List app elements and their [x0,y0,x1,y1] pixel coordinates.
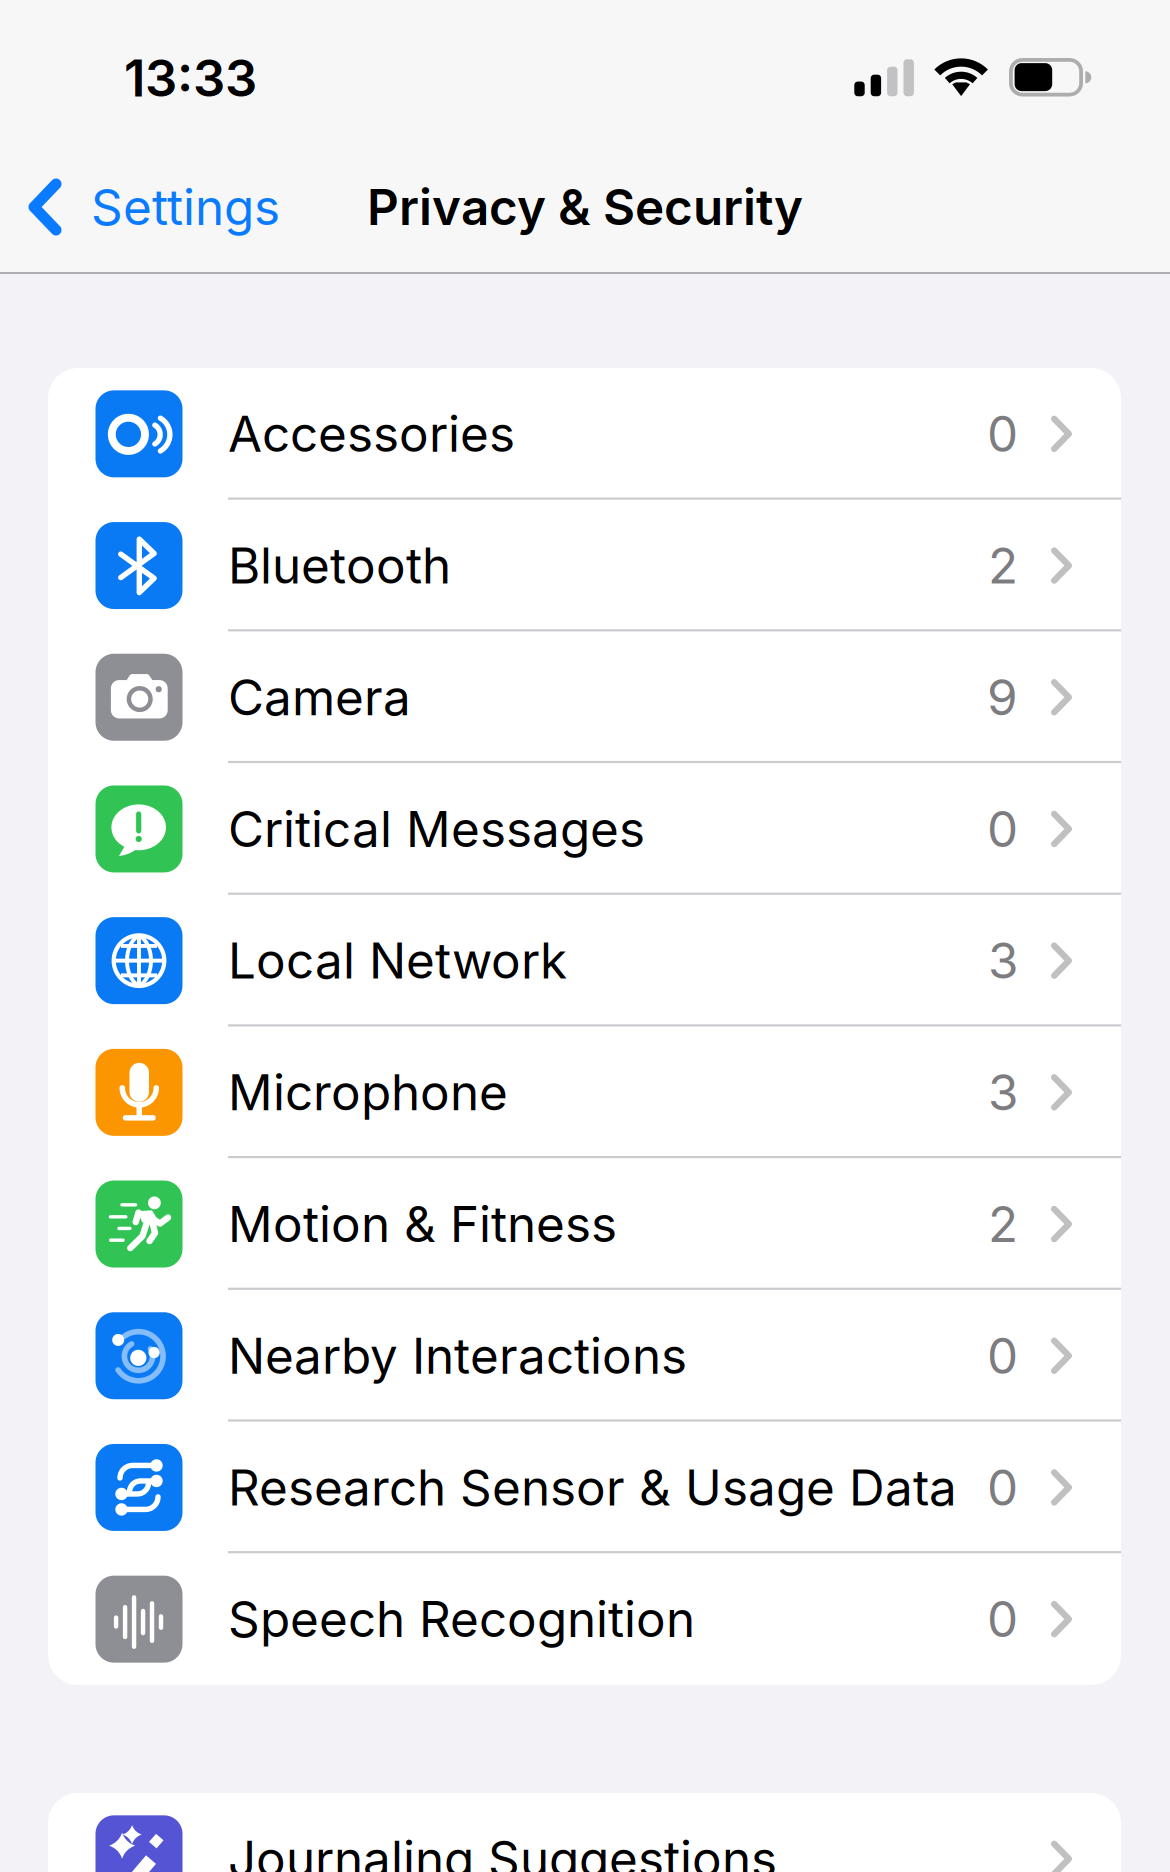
button[interactable]: Critical Messages [48,763,1121,895]
staticText: Camera [228,667,411,727]
staticText: 3 [988,1062,1018,1122]
staticText: Microphone [228,1062,508,1122]
button[interactable]: Bluetooth [48,500,1121,631]
staticText: Speech Recognition [228,1589,695,1649]
button[interactable]: Settings [0,140,296,274]
staticText: 0 [987,799,1018,859]
staticText: Nearby Interactions [228,1326,687,1386]
staticText: 2 [988,1194,1018,1254]
staticText: 0 [987,404,1018,464]
button[interactable]: Camera [48,631,1121,763]
staticText: Critical Messages [228,799,645,859]
staticText: Settings [91,177,280,237]
staticText: Local Network [228,931,567,990]
staticText: 3 [988,931,1018,990]
button[interactable]: Accessories [48,368,1121,500]
staticText: 13:33 [124,47,257,109]
button[interactable]: Speech Recognition [48,1553,1121,1685]
staticText: Bluetooth [228,536,451,595]
button[interactable]: Motion & Fitness [48,1158,1121,1290]
button[interactable]: Nearby Interactions [48,1290,1121,1422]
staticText: Journaling Suggestions [228,1829,777,1872]
staticText: 2 [988,536,1018,595]
staticText: Motion & Fitness [228,1194,617,1254]
button[interactable]: Journaling Suggestions [48,1793,1121,1872]
staticText: 0 [987,1458,1018,1517]
staticText: Accessories [228,404,515,464]
staticText: Privacy & Security [367,177,803,237]
button[interactable]: Research Sensor & Usage Data [48,1422,1121,1553]
button[interactable]: Local Network [48,895,1121,1026]
staticText: 0 [987,1589,1018,1649]
staticText: Research Sensor & Usage Data [228,1458,957,1517]
staticText: 9 [987,667,1018,727]
button[interactable]: Microphone [48,1026,1121,1158]
staticText: 0 [987,1326,1018,1386]
